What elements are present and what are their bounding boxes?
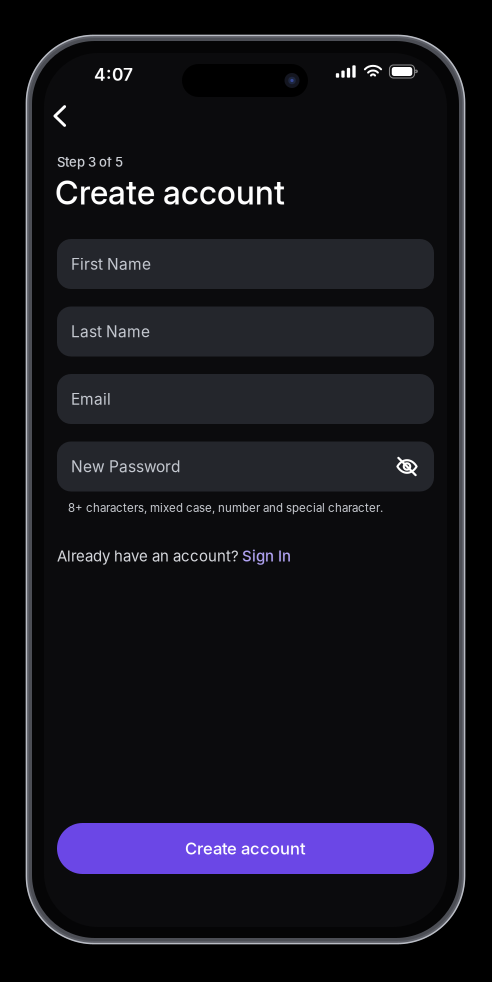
staticText: Create account [185,838,306,858]
staticText: Step 3 of 5 [57,154,123,170]
button[interactable]: Back [42,94,81,138]
button[interactable]: Hide password [396,455,418,477]
staticText: 4:07 [94,64,133,85]
staticText: First Name [71,255,151,273]
staticText: New Password [71,457,180,476]
staticText: Create account [55,173,285,212]
staticText: Sign In [242,547,291,565]
staticText: Email [71,390,111,408]
staticText: Last Name [71,322,150,341]
staticText: Already have an account? [57,547,239,565]
button[interactable]: Create account [57,823,434,874]
button[interactable]: Sign In [242,547,291,565]
staticText: 8+ characters, mixed case, number and sp… [68,501,383,515]
